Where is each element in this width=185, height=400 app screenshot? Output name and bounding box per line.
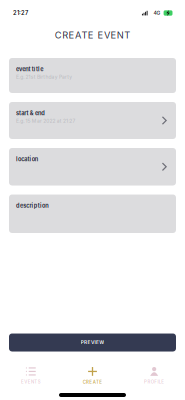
staticText: 4G: [154, 10, 161, 16]
button[interactable]: PROFILE: [123, 367, 185, 385]
staticText: location: [16, 156, 38, 169]
staticText: CREATE EVENT: [55, 29, 130, 41]
staticText: E.g. 15 Mar 2022 at 21:27: [16, 118, 75, 124]
button[interactable]: CREATE: [62, 367, 123, 385]
button[interactable]: description: [9, 194, 176, 233]
button[interactable]: PREVIEW: [9, 333, 176, 351]
button[interactable]: start & end: [9, 102, 176, 139]
staticText: CREATE: [83, 379, 102, 385]
staticText: EVENTS: [21, 379, 41, 384]
button[interactable]: EVENTS: [0, 367, 62, 385]
staticText: event title: [16, 66, 43, 73]
staticText: description: [16, 202, 48, 216]
button[interactable]: location: [9, 148, 176, 185]
staticText: PROFILE: [144, 379, 164, 385]
staticText: PREVIEW: [81, 340, 104, 345]
staticText: E.g. 21st Birthday Party: [16, 74, 72, 80]
button[interactable]: event title: [9, 58, 176, 93]
staticText: 21:27: [13, 9, 28, 16]
staticText: start & end: [16, 110, 45, 117]
